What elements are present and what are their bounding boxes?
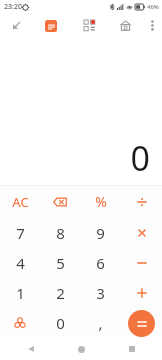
button[interactable]: %	[80, 186, 121, 217]
button[interactable]: Minus	[121, 248, 162, 278]
button[interactable]: 8	[40, 217, 80, 248]
staticText: 2	[56, 283, 65, 303]
staticText: 4	[16, 253, 25, 273]
staticText: 9	[96, 223, 105, 243]
button[interactable]: 5	[40, 248, 80, 278]
button[interactable]: Apps	[70, 14, 108, 37]
button[interactable]: Plus	[121, 278, 162, 308]
button[interactable]: Scientific mode	[0, 308, 40, 338]
button[interactable]: Home	[108, 14, 142, 37]
staticText: AC	[12, 193, 29, 211]
button[interactable]: 1	[0, 278, 40, 308]
staticText: ,	[98, 313, 103, 333]
staticText: 7	[16, 223, 25, 243]
button[interactable]: 0	[40, 308, 80, 338]
button[interactable]: 2	[40, 278, 80, 308]
staticText: %	[95, 192, 107, 211]
button[interactable]: Divide	[121, 186, 162, 217]
staticText: 6	[96, 253, 105, 273]
button[interactable]: 7	[0, 217, 40, 248]
button[interactable]: AC	[0, 186, 40, 217]
button[interactable]: Back	[11, 338, 51, 360]
staticText: 3	[96, 283, 105, 303]
button[interactable]: Notes	[32, 14, 70, 37]
button[interactable]: Back	[0, 14, 32, 37]
button[interactable]: 4	[0, 248, 40, 278]
staticText: 23:20	[4, 2, 22, 12]
button[interactable]: More options	[142, 14, 162, 37]
button[interactable]: 3	[80, 278, 121, 308]
staticText: 1	[16, 283, 25, 303]
staticText: 0	[130, 135, 150, 181]
button[interactable]: 9	[80, 217, 121, 248]
button[interactable]: Home	[61, 338, 101, 360]
button[interactable]: Multiply	[121, 217, 162, 248]
button[interactable]: 6	[80, 248, 121, 278]
button[interactable]: ,	[80, 308, 121, 338]
button[interactable]: Backspace	[40, 186, 80, 217]
staticText: 5	[56, 253, 65, 273]
staticText: 46%	[147, 3, 159, 11]
button[interactable]: Equals	[121, 308, 162, 338]
staticText: 0	[56, 313, 65, 333]
button[interactable]: Recent apps	[112, 338, 152, 360]
staticText: 8	[56, 223, 65, 243]
